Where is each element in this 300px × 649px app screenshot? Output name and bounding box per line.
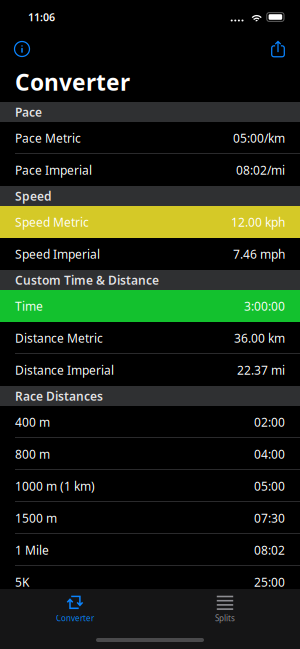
staticText: Converter <box>15 67 130 97</box>
staticText: Speed Metric <box>15 214 89 230</box>
button[interactable]: 800 m <box>0 438 300 470</box>
button[interactable]: Converter <box>0 589 150 625</box>
staticText: 02:00 <box>254 414 285 430</box>
staticText: 3:00:00 <box>244 298 285 314</box>
staticText: 07:30 <box>254 510 285 526</box>
staticText: 25:00 <box>254 574 285 590</box>
button[interactable]: 1500 m <box>0 502 300 534</box>
staticText: Pace Metric <box>15 130 81 146</box>
staticText: 400 m <box>15 414 50 430</box>
button[interactable]: Distance Metric <box>0 322 300 354</box>
staticText: Time <box>15 298 43 314</box>
staticText: 04:00 <box>254 446 285 462</box>
button[interactable]: 1 Mile <box>0 534 300 566</box>
staticText: Pace Imperial <box>15 162 92 178</box>
staticText: Custom Time & Distance <box>15 272 159 288</box>
staticText: 1000 m (1 km) <box>15 478 95 494</box>
button[interactable]: Pace Metric <box>0 122 300 154</box>
button[interactable]: 400 m <box>0 406 300 438</box>
staticText: Splits <box>215 613 235 623</box>
button[interactable]: 1000 m (1 km) <box>0 470 300 502</box>
button[interactable]: Info <box>7 38 37 60</box>
staticText: 05:00 <box>254 478 285 494</box>
button[interactable]: Pace Imperial <box>0 154 300 186</box>
staticText: Race Distances <box>15 388 103 404</box>
staticText: 7.46 mph <box>233 246 285 262</box>
staticText: 800 m <box>15 446 50 462</box>
staticText: 12.00 kph <box>231 214 285 230</box>
staticText: 05:00/km <box>233 130 285 146</box>
button[interactable]: 5K <box>0 566 300 598</box>
staticText: Distance Metric <box>15 330 103 346</box>
button[interactable]: Speed Imperial <box>0 238 300 270</box>
staticText: 1500 m <box>15 510 57 526</box>
staticText: 08:02 <box>254 542 285 558</box>
button[interactable]: Speed Metric <box>0 206 300 238</box>
staticText: Distance Imperial <box>15 362 114 378</box>
button[interactable]: Splits <box>150 589 300 625</box>
staticText: 22.37 mi <box>237 362 285 378</box>
button[interactable]: Share <box>263 38 293 60</box>
button[interactable]: Time <box>0 290 300 322</box>
staticText: 5K <box>15 574 29 590</box>
staticText: Speed Imperial <box>15 246 100 262</box>
staticText: 36.00 km <box>234 330 285 346</box>
staticText: Speed <box>15 188 52 204</box>
staticText: 11:06 <box>28 10 55 24</box>
staticText: 08:02/mi <box>236 162 285 178</box>
staticText: 1 Mile <box>15 542 49 558</box>
staticText: Converter <box>56 613 94 623</box>
staticText: Pace <box>15 104 42 120</box>
button[interactable]: Distance Imperial <box>0 354 300 386</box>
